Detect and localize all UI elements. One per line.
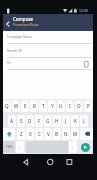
staticText: C [38, 131, 41, 137]
staticText: Promotional Route [13, 23, 39, 27]
staticText: O [77, 103, 81, 109]
staticText: 2 [18, 100, 20, 103]
staticText: A [10, 118, 14, 124]
staticText: Sender ID [7, 49, 22, 53]
button[interactable]: J [62, 115, 70, 127]
staticText: 12:30 [79, 8, 88, 13]
staticText: J [65, 118, 67, 124]
button[interactable]: F [35, 115, 43, 127]
staticText: , [19, 144, 21, 150]
staticText: D [28, 118, 32, 124]
staticText: 3 [27, 100, 29, 103]
button[interactable] [80, 128, 93, 140]
staticText: 9 [81, 100, 83, 103]
staticText: 0 [90, 100, 92, 103]
staticText: T [42, 103, 45, 109]
button[interactable]: O [75, 100, 83, 112]
staticText: M [73, 131, 78, 137]
button[interactable] [3, 128, 15, 140]
button[interactable] [84, 61, 89, 67]
staticText: V [47, 131, 50, 137]
staticText: Q [5, 103, 9, 109]
staticText: B [55, 131, 59, 137]
button[interactable]: D [26, 115, 34, 127]
staticText: U [59, 103, 63, 109]
staticText: W [14, 103, 19, 109]
staticText: Y [51, 103, 54, 109]
staticText: 1 [9, 100, 11, 103]
staticText: H [55, 118, 59, 124]
button[interactable]: K [71, 115, 79, 127]
button[interactable] [4, 20, 11, 28]
staticText: K [74, 118, 77, 124]
button[interactable]: G [44, 115, 52, 127]
button[interactable]: P [84, 100, 92, 112]
staticText: G [46, 118, 50, 124]
staticText: . [72, 144, 74, 150]
button[interactable] [3, 31, 93, 44]
staticText: 4 [36, 100, 38, 103]
staticText: L [83, 118, 86, 124]
staticText: S [20, 118, 23, 124]
staticText: E [24, 103, 27, 109]
button[interactable]: X [26, 128, 34, 140]
button[interactable]: V [44, 128, 52, 140]
button[interactable]: H [53, 115, 61, 127]
button[interactable]: N [62, 128, 70, 140]
staticText: F [38, 118, 41, 124]
staticText: Campaign Name [7, 35, 33, 39]
button[interactable]: . [69, 141, 77, 153]
staticText: I [69, 103, 71, 109]
button[interactable]: A [8, 115, 16, 127]
button[interactable]: R [30, 100, 38, 112]
staticText: ... [87, 50, 90, 55]
button[interactable]: Q [3, 100, 11, 112]
staticText: ?123 [6, 145, 13, 149]
staticText: 7 [63, 100, 65, 103]
staticText: Compose [13, 16, 34, 22]
button[interactable]: Y [48, 100, 56, 112]
staticText: 6 [54, 100, 56, 103]
button[interactable]: ?123 [3, 141, 15, 153]
button[interactable]: C [35, 128, 43, 140]
button[interactable]: B [53, 128, 61, 140]
button[interactable]: E [21, 100, 29, 112]
staticText: Z [20, 131, 23, 137]
button[interactable]: W [12, 100, 20, 112]
staticText: X [29, 131, 32, 137]
button[interactable]: S [17, 115, 25, 127]
staticText: To [7, 61, 11, 65]
button[interactable]: M [71, 128, 79, 140]
staticText: R [33, 103, 36, 109]
staticText: N [64, 131, 68, 137]
button[interactable]: Z [17, 128, 25, 140]
staticText: 8 [72, 100, 74, 103]
button[interactable]: L [80, 115, 88, 127]
staticText: P [87, 103, 90, 109]
button[interactable]: I [66, 100, 74, 112]
button[interactable]: T [39, 100, 47, 112]
button[interactable]: , [16, 141, 24, 153]
button[interactable]: U [57, 100, 65, 112]
button[interactable] [81, 143, 90, 152]
staticText: 5 [45, 100, 47, 103]
